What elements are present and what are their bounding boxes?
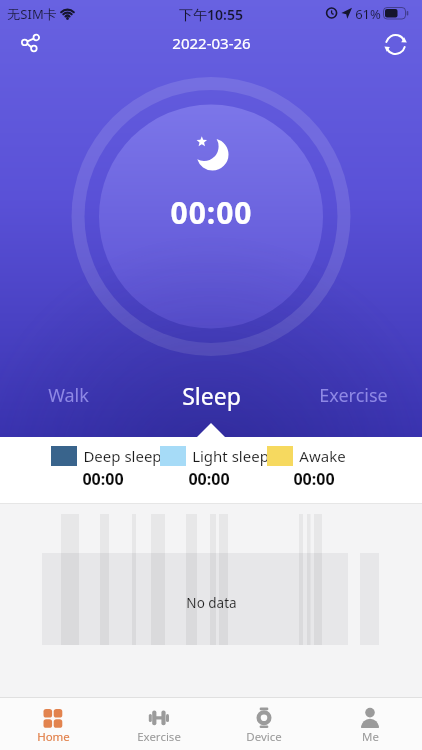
button[interactable]: Me (317, 698, 422, 750)
staticText: Walk (48, 383, 89, 408)
staticText: 下午10:55 (179, 5, 243, 24)
staticText: Exercise (319, 383, 388, 408)
staticText: 00:00 (82, 468, 124, 490)
button[interactable]: Exercise (306, 378, 400, 412)
staticText: Home (37, 729, 70, 745)
button[interactable]: Home (0, 698, 106, 750)
staticText: 2022-03-26 (172, 33, 251, 53)
staticText: 00:00 (170, 192, 253, 224)
staticText: Me (362, 729, 379, 745)
button[interactable]: Device (211, 698, 317, 750)
button[interactable] (380, 29, 410, 59)
button[interactable]: Sleep (161, 376, 261, 414)
staticText: Device (246, 729, 282, 745)
button[interactable]: Walk (28, 378, 108, 412)
staticText: 00:00 (293, 468, 335, 490)
staticText: Deep sleep (83, 446, 162, 466)
button[interactable]: 2022-03-26 (141, 32, 281, 54)
staticText: No data (186, 594, 237, 612)
button[interactable] (14, 27, 46, 59)
staticText: 无SIM卡 (7, 5, 57, 23)
staticText: Light sleep (192, 446, 269, 466)
staticText: 00:00 (188, 468, 230, 490)
button[interactable]: Exercise (106, 698, 212, 750)
staticText: Awake (299, 446, 346, 466)
staticText: 61% (355, 5, 381, 23)
staticText: Exercise (137, 729, 181, 745)
staticText: Sleep (182, 380, 241, 411)
